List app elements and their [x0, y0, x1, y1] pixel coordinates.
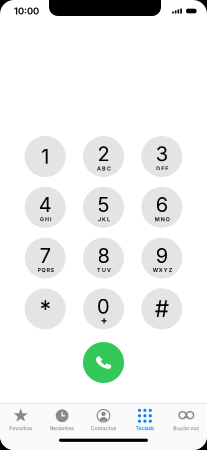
- staticText: P Q R S: [38, 267, 54, 273]
- staticText: +: [100, 314, 107, 327]
- staticText: W X Y Z: [153, 267, 172, 273]
- button[interactable]: Contactos: [83, 403, 124, 431]
- staticText: A B C: [97, 165, 111, 172]
- staticText: 1: [41, 145, 49, 168]
- staticText: #: [155, 295, 169, 322]
- staticText: 3: [156, 142, 168, 166]
- button[interactable]: Call: [83, 342, 124, 383]
- staticText: T U V: [97, 267, 111, 273]
- staticText: Buzón voz: [173, 425, 199, 431]
- staticText: 7: [40, 244, 51, 267]
- button[interactable]: Teclado: [124, 403, 166, 431]
- staticText: 0: [97, 295, 110, 318]
- button[interactable]: Recientes: [41, 403, 83, 431]
- button[interactable]: 9: [141, 238, 182, 279]
- button[interactable]: 5: [83, 187, 124, 228]
- staticText: G H I: [40, 216, 51, 222]
- staticText: Favoritos: [9, 425, 32, 431]
- button[interactable]: 0: [83, 288, 124, 329]
- staticText: 4: [39, 193, 52, 217]
- staticText: Contactos: [90, 425, 116, 431]
- staticText: 2: [97, 142, 109, 166]
- button[interactable]: 8: [83, 238, 124, 279]
- staticText: D E F: [156, 165, 168, 172]
- button[interactable]: *: [25, 288, 66, 329]
- staticText: J K L: [98, 216, 110, 222]
- button[interactable]: Favoritos: [0, 403, 41, 431]
- staticText: 9: [156, 244, 168, 267]
- button[interactable]: Buzón voz: [166, 403, 207, 431]
- button[interactable]: 6: [141, 187, 182, 228]
- staticText: 10:00: [14, 5, 39, 16]
- staticText: M N O: [155, 216, 170, 222]
- button[interactable]: 4: [25, 187, 66, 228]
- button[interactable]: 3: [141, 136, 182, 177]
- staticText: Teclado: [135, 425, 154, 431]
- button[interactable]: 2: [83, 136, 124, 177]
- staticText: 8: [97, 244, 109, 267]
- staticText: 6: [156, 193, 168, 217]
- staticText: *: [40, 295, 51, 322]
- button[interactable]: 7: [25, 238, 66, 279]
- button[interactable]: #: [141, 288, 182, 329]
- staticText: Recientes: [50, 425, 74, 431]
- staticText: 5: [97, 193, 109, 217]
- button[interactable]: 1: [25, 136, 66, 177]
